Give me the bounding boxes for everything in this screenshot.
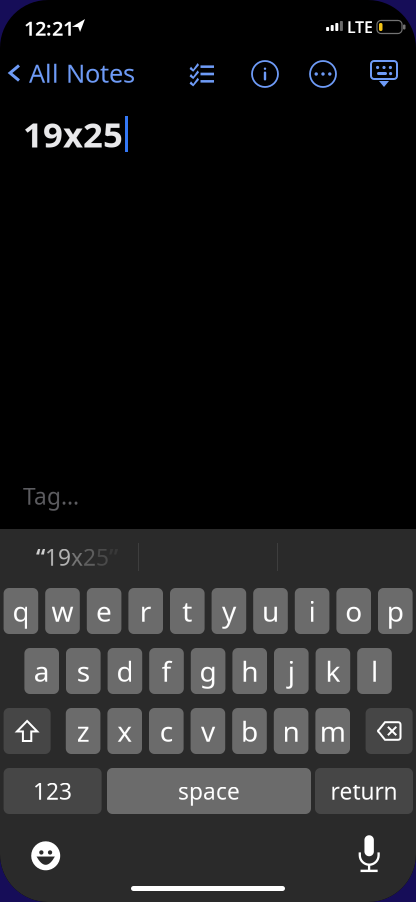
staticText: x <box>71 542 83 572</box>
button[interactable]: p <box>378 588 413 634</box>
staticText: x <box>117 712 132 750</box>
staticText: Tag... <box>23 481 79 511</box>
button[interactable]: Dictation <box>350 835 388 873</box>
button[interactable]: Info <box>245 56 285 92</box>
button[interactable]: u <box>253 588 288 634</box>
button[interactable]: w <box>45 588 80 634</box>
button[interactable]: More <box>303 56 343 92</box>
button[interactable]: o <box>336 588 371 634</box>
button[interactable]: j <box>274 648 309 694</box>
staticText: t <box>182 592 192 630</box>
button[interactable]: r <box>128 588 163 634</box>
button[interactable]: b <box>232 708 267 754</box>
staticText: u <box>262 592 279 630</box>
button[interactable]: t <box>170 588 205 634</box>
button[interactable]: v <box>191 708 225 754</box>
staticText: h <box>241 652 258 690</box>
staticText: g <box>200 652 217 690</box>
button[interactable]: Emoji <box>27 837 65 875</box>
staticText: v <box>201 712 215 750</box>
button[interactable]: h <box>232 648 267 694</box>
staticText: return <box>330 776 397 806</box>
staticText: a <box>34 652 50 690</box>
staticText: 12:21 <box>24 15 74 41</box>
button[interactable]: a <box>24 648 59 694</box>
button[interactable]: z <box>66 708 100 754</box>
staticText: i <box>309 592 316 630</box>
button[interactable]: c <box>149 708 184 754</box>
staticText: r <box>140 592 152 630</box>
staticText: p <box>387 592 404 630</box>
button[interactable]: m <box>315 708 350 754</box>
staticText: j <box>288 652 295 690</box>
button[interactable]: i <box>295 588 329 634</box>
staticText: 2 <box>83 542 96 572</box>
button[interactable]: k <box>316 648 350 694</box>
staticText: w <box>51 592 73 630</box>
staticText: k <box>325 652 340 690</box>
staticText: b <box>241 712 258 750</box>
staticText: f <box>161 652 171 690</box>
staticText: “ <box>36 542 45 572</box>
staticText: space <box>178 776 240 806</box>
staticText: ” <box>109 542 118 572</box>
staticText: 123 <box>33 776 72 806</box>
button[interactable]: return <box>315 768 413 814</box>
staticText: 19 <box>45 542 71 572</box>
button[interactable]: Dismiss Keyboard <box>364 56 404 92</box>
staticText: c <box>160 712 173 750</box>
button[interactable] <box>4 708 51 754</box>
button[interactable]: f <box>149 648 184 694</box>
staticText: 19x25 <box>23 111 123 157</box>
button[interactable]: n <box>274 708 308 754</box>
button[interactable]: x <box>107 708 142 754</box>
button[interactable]: e <box>87 588 121 634</box>
staticText: s <box>77 652 90 690</box>
button[interactable]: l <box>357 648 392 694</box>
button[interactable]: space <box>107 768 311 814</box>
button[interactable]: 123 <box>4 768 102 814</box>
staticText: m <box>320 712 346 750</box>
staticText: All Notes <box>29 56 135 90</box>
staticText: q <box>12 592 29 630</box>
staticText: n <box>283 712 300 750</box>
staticText: l <box>371 652 378 690</box>
button[interactable]: s <box>66 648 101 694</box>
button[interactable]: All Notes <box>8 56 138 90</box>
button[interactable]: Checklist <box>182 56 222 92</box>
staticText: LTE <box>347 16 373 38</box>
staticText: y <box>222 592 236 630</box>
button[interactable] <box>366 708 413 754</box>
staticText: o <box>345 592 362 630</box>
staticText: 5 <box>96 542 109 572</box>
button[interactable]: y <box>212 588 246 634</box>
staticText: e <box>96 592 112 630</box>
staticText: z <box>77 712 90 750</box>
staticText: d <box>116 652 133 690</box>
button[interactable]: q <box>4 588 38 634</box>
button[interactable]: g <box>191 648 225 694</box>
button[interactable]: d <box>108 648 142 694</box>
